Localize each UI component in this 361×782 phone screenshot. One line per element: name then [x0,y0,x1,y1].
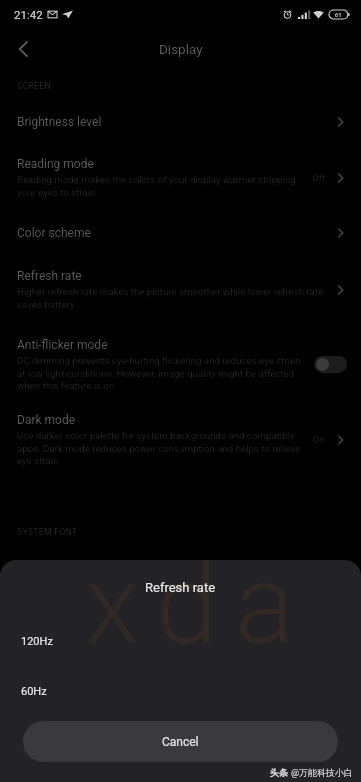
staticText: SYSTEM FONT [17,527,78,537]
staticText: SCREEN [17,81,51,91]
staticText: On [313,434,326,445]
button[interactable]: 60Hz [0,669,361,713]
staticText: Color scheme [17,226,91,240]
staticText: 60Hz [21,685,47,698]
staticText: DC dimming prevents eye-hurting flickeri… [17,355,310,391]
staticText: Off [312,172,326,183]
button[interactable]: Brightness level [0,103,361,142]
staticText: Reading mode [17,157,94,171]
button[interactable]: Color scheme [0,210,361,254]
staticText: @万能科技小白 [291,767,354,778]
button[interactable]: Anti-flicker mode [0,322,361,403]
staticText: Display [159,41,203,57]
staticText: Higher refresh rate makes the picture sm… [17,286,329,310]
staticText: 61 [335,11,342,18]
staticText: Refresh rate [17,269,82,283]
button[interactable]: Reading mode [0,142,361,210]
button[interactable]: Refresh rate [0,254,361,322]
button[interactable]: Dark mode [0,403,361,478]
button[interactable]: Back [0,29,44,69]
staticText: Reading mode makes the colors of your di… [17,174,308,198]
staticText: Use darker color palette for system back… [17,430,309,466]
button[interactable]: Anti-flicker mode toggle [314,356,347,373]
staticText: xda [85,560,312,670]
staticText: Cancel [162,735,199,749]
staticText: Dark mode [17,413,76,427]
button[interactable]: 120Hz [0,619,361,663]
staticText: 头条 [270,767,288,778]
staticText: 21:42 [14,8,43,21]
button[interactable]: Cancel [23,721,338,762]
staticText: 120Hz [21,635,53,648]
staticText: Anti-flicker mode [17,338,108,352]
staticText: Brightness level [17,115,102,129]
staticText: Refresh rate [145,580,216,595]
